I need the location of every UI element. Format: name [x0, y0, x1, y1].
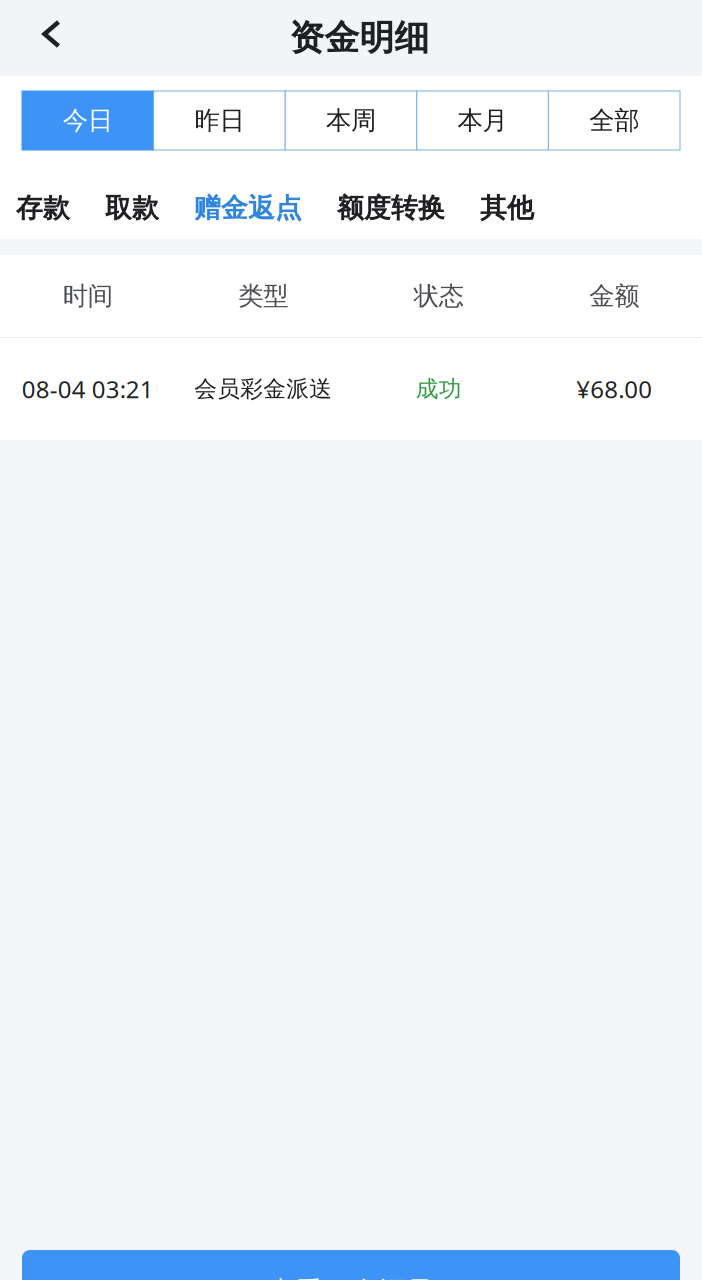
button[interactable]: Back — [0, 0, 61, 76]
staticText: 金额 — [589, 280, 639, 311]
staticText: 08-04 03:21 — [22, 373, 154, 405]
button[interactable]: 取款 — [105, 181, 159, 235]
button[interactable]: 今日 — [22, 91, 154, 150]
staticText: ¥68.00 — [576, 373, 652, 405]
button[interactable]: 全部 — [548, 91, 680, 150]
button[interactable]: 昨日 — [154, 91, 285, 150]
staticText: 其他 — [480, 192, 534, 224]
staticText: 存款 — [16, 192, 70, 224]
button[interactable]: 本月 — [417, 91, 548, 150]
staticText: 昨日 — [194, 105, 244, 136]
staticText: 赠金返点 — [194, 192, 302, 224]
button[interactable]: 本周 — [285, 91, 417, 150]
staticText: 取款 — [105, 192, 159, 224]
staticText: 状态 — [414, 280, 464, 311]
staticText: 成功 — [416, 375, 462, 403]
staticText: 全部 — [589, 105, 639, 136]
staticText: 类型 — [238, 280, 288, 311]
staticText: 今日 — [63, 105, 113, 136]
staticText: 本周 — [326, 105, 376, 136]
staticText: 时间 — [63, 280, 113, 311]
staticText: 资金明细 — [289, 17, 429, 59]
button[interactable]: 赠金返点 — [194, 181, 302, 235]
button[interactable]: 存款 — [16, 181, 70, 235]
staticText: 查看更多记录 — [267, 1275, 435, 1280]
button[interactable]: 08-04 03:21 — [0, 338, 702, 440]
staticText: 本月 — [458, 105, 508, 136]
button[interactable]: 额度转换 — [337, 181, 445, 235]
button[interactable]: 查看更多记录 — [22, 1250, 680, 1280]
staticText: 会员彩金派送 — [194, 375, 332, 403]
button[interactable]: 其他 — [480, 181, 534, 235]
staticText: 额度转换 — [337, 192, 445, 224]
